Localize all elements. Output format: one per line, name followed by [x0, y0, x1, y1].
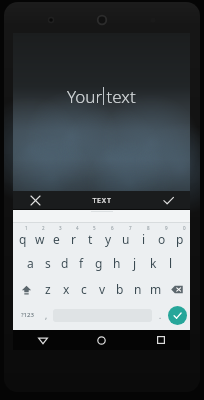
staticText: f	[79, 255, 84, 271]
button[interactable]: a	[22, 250, 39, 276]
staticText: ,	[45, 310, 48, 321]
staticText: q	[19, 231, 27, 247]
button[interactable]: Backspace	[165, 276, 189, 302]
button[interactable]: m	[147, 276, 165, 302]
staticText: .	[159, 310, 162, 321]
button[interactable]: Recents	[131, 330, 190, 350]
staticText: Your text	[67, 85, 136, 108]
button[interactable]: x	[57, 276, 75, 302]
staticText: n	[134, 281, 142, 297]
button[interactable]	[13, 210, 190, 223]
staticText: d	[61, 255, 69, 271]
staticText: e	[53, 231, 60, 247]
button[interactable]: 3	[48, 223, 65, 250]
button[interactable]: 8	[135, 223, 153, 250]
button[interactable]: Shift	[14, 276, 39, 302]
staticText: j	[133, 255, 137, 271]
button[interactable]: v	[93, 276, 111, 302]
button[interactable]: f	[73, 250, 90, 276]
staticText: 3	[59, 225, 62, 231]
staticText: z	[45, 281, 51, 297]
button[interactable]: Cancel	[13, 191, 57, 210]
button[interactable]: c	[75, 276, 93, 302]
button[interactable]: Back	[13, 330, 72, 350]
staticText: w	[35, 231, 45, 247]
button[interactable]: Done	[146, 191, 190, 210]
button[interactable]: 1	[14, 223, 31, 250]
staticText: t	[88, 231, 93, 247]
staticText: TEXT	[92, 196, 112, 206]
staticText: l	[169, 255, 173, 271]
staticText: 8	[147, 225, 150, 231]
staticText: ?123	[21, 311, 34, 319]
button[interactable]: l	[162, 250, 180, 276]
staticText: 9	[165, 225, 168, 231]
button[interactable]: 0	[171, 223, 189, 250]
staticText: 6	[111, 225, 114, 231]
staticText: p	[176, 231, 184, 247]
staticText: 7	[129, 225, 132, 231]
button[interactable]: s	[39, 250, 56, 276]
staticText: s	[45, 255, 51, 271]
button[interactable]: k	[144, 250, 162, 276]
button[interactable]: Emoji	[39, 302, 53, 328]
staticText: u	[122, 231, 130, 247]
staticText: y	[105, 231, 112, 247]
staticText: k	[150, 255, 157, 271]
staticText: 5	[93, 225, 96, 231]
button[interactable]: 4	[65, 223, 82, 250]
button[interactable]: .	[152, 302, 168, 328]
staticText: b	[116, 281, 124, 297]
staticText: a	[27, 255, 34, 271]
staticText: m	[150, 281, 162, 297]
staticText: g	[95, 255, 103, 271]
button[interactable]: z	[39, 276, 57, 302]
button[interactable]: 7	[117, 223, 135, 250]
button[interactable]: g	[90, 250, 108, 276]
staticText: v	[99, 281, 106, 297]
staticText: h	[113, 255, 121, 271]
staticText: 0	[183, 225, 186, 231]
staticText: o	[158, 231, 166, 247]
button[interactable]: Enter	[168, 306, 187, 325]
staticText: r	[71, 231, 76, 247]
staticText: 4	[76, 225, 79, 231]
staticText: 2	[42, 225, 45, 231]
button[interactable]: Home	[72, 330, 131, 350]
button[interactable]: 6	[99, 223, 117, 250]
button[interactable]: 9	[153, 223, 171, 250]
button[interactable]: 2	[31, 223, 48, 250]
staticText: x	[63, 281, 70, 297]
button[interactable]: 5	[82, 223, 99, 250]
staticText: i	[142, 231, 146, 247]
button[interactable]: b	[111, 276, 129, 302]
staticText: c	[81, 281, 87, 297]
button[interactable]: j	[126, 250, 144, 276]
button[interactable]: ?123	[15, 302, 39, 328]
button[interactable]: d	[56, 250, 73, 276]
button[interactable]: h	[108, 250, 126, 276]
button[interactable]: n	[129, 276, 147, 302]
staticText: 1	[25, 225, 28, 231]
